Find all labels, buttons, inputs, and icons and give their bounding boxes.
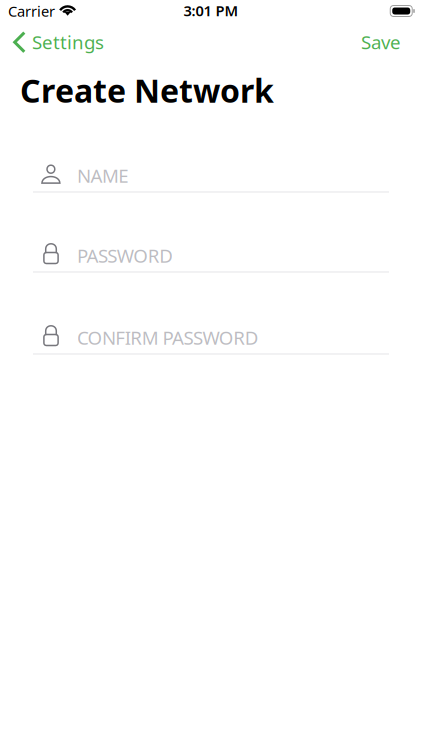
- button[interactable]: PASSWORD: [33, 240, 389, 272]
- staticText: Carrier: [8, 1, 55, 21]
- staticText: PASSWORD: [77, 243, 173, 268]
- button[interactable]: Settings: [0, 22, 114, 58]
- staticText: CONFIRM PASSWORD: [77, 325, 259, 350]
- staticText: Settings: [32, 30, 104, 54]
- staticText: NAME: [77, 163, 128, 188]
- staticText: Save: [361, 30, 401, 54]
- button[interactable]: Save: [340, 22, 422, 58]
- button[interactable]: NAME: [33, 160, 389, 192]
- staticText: Create Network: [20, 69, 274, 111]
- button[interactable]: CONFIRM PASSWORD: [33, 322, 389, 354]
- staticText: 3:01 PM: [183, 1, 238, 20]
